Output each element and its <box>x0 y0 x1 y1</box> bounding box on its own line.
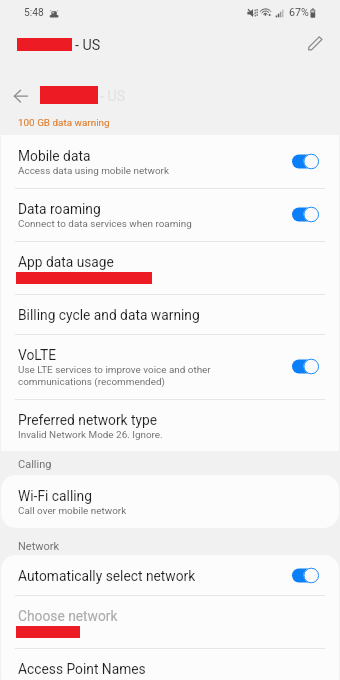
button[interactable]: Toggle <box>292 206 319 223</box>
staticText: Billing cycle and data warning <box>18 304 200 324</box>
staticText: Invalid Network Mode 26. Ignore. <box>18 429 163 441</box>
button[interactable]: Wi-Fi calling <box>1 475 339 528</box>
staticText: Use LTE services to improve voice and ot… <box>18 364 211 388</box>
staticText: - US <box>75 37 101 54</box>
staticText: Access data using mobile network <box>18 165 169 177</box>
button[interactable]: Preferred network type <box>1 399 339 451</box>
button[interactable]: VoLTE <box>1 334 339 399</box>
staticText: Network <box>18 540 60 553</box>
staticText: VoLTE <box>18 344 56 364</box>
staticText: Preferred network type <box>18 409 158 429</box>
staticText: Connect to data services when roaming <box>18 218 192 230</box>
staticText: App data usage <box>18 251 114 271</box>
button[interactable]: Automatically select network <box>1 555 339 595</box>
staticText: - US <box>100 88 126 105</box>
button[interactable]: Data roaming <box>1 188 339 241</box>
button[interactable]: Choose network <box>1 595 339 648</box>
button[interactable]: Toggle <box>292 567 319 584</box>
staticText: Access Point Names <box>18 658 146 678</box>
button[interactable]: Back <box>8 83 34 109</box>
staticText: Automatically select network <box>18 565 196 585</box>
button[interactable]: Rename <box>303 31 329 57</box>
staticText: 5:48 <box>24 6 44 18</box>
button[interactable]: Mobile data <box>1 135 339 188</box>
staticText: Data roaming <box>18 198 101 218</box>
staticText: Call over mobile network <box>18 505 127 517</box>
staticText: Wi-Fi calling <box>18 485 92 505</box>
staticText: 67% <box>289 6 309 18</box>
button[interactable]: Toggle <box>292 358 319 375</box>
button[interactable]: App data usage <box>1 241 339 294</box>
staticText: Choose network <box>18 605 118 625</box>
staticText: Calling <box>18 458 52 471</box>
button[interactable]: Billing cycle and data warning <box>1 294 339 334</box>
button[interactable]: Access Point Names <box>1 648 339 680</box>
staticText: Mobile data <box>18 145 91 165</box>
staticText: 100 GB data warning <box>18 116 110 128</box>
button[interactable]: Toggle <box>292 153 319 170</box>
